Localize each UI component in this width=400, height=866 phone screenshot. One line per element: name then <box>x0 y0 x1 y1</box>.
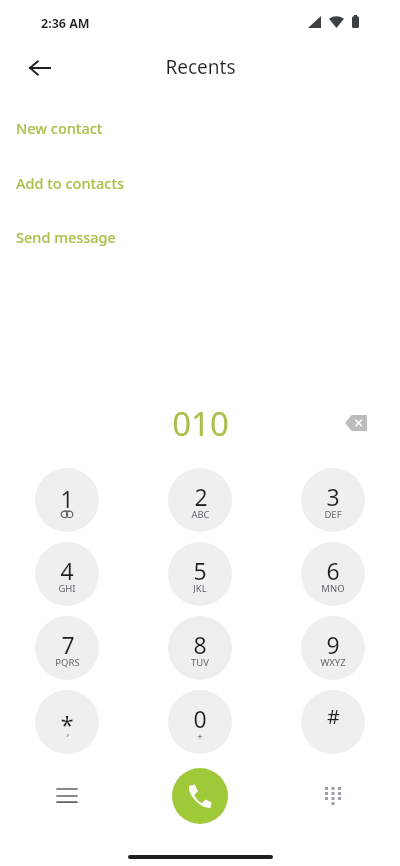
button[interactable]: 3 <box>301 468 365 532</box>
button[interactable]: 6 <box>301 542 365 606</box>
button[interactable]: 4 <box>35 542 99 606</box>
staticText: WXYZ <box>320 656 346 668</box>
button[interactable]: 1 <box>35 468 99 532</box>
button[interactable]: # <box>301 690 365 754</box>
staticText: 6 <box>326 555 340 581</box>
button[interactable]: 7 <box>35 616 99 680</box>
staticText: 1 <box>60 483 74 509</box>
button[interactable]: * <box>35 690 99 754</box>
staticText: # <box>327 703 340 729</box>
staticText: ABC <box>191 508 210 520</box>
staticText: DEF <box>324 508 342 520</box>
staticText: 3 <box>326 481 340 507</box>
staticText: New contact <box>16 118 103 138</box>
button[interactable]: 8 <box>168 616 232 680</box>
button[interactable]: Call log <box>45 774 89 818</box>
staticText: 4 <box>60 555 74 581</box>
staticText: JKL <box>193 582 207 594</box>
button[interactable]: Back <box>18 46 62 90</box>
staticText: + <box>197 730 203 742</box>
staticText: PQRS <box>55 656 80 668</box>
staticText: 010 <box>172 401 229 446</box>
staticText: GHI <box>58 582 76 594</box>
button[interactable]: 9 <box>301 616 365 680</box>
button[interactable]: Dialpad <box>311 774 355 818</box>
staticText: Send message <box>16 227 116 247</box>
button[interactable]: 2 <box>168 468 232 532</box>
staticText: Add to contacts <box>16 173 125 193</box>
staticText: 2 <box>194 481 208 507</box>
staticText: 9 <box>326 629 340 655</box>
button[interactable]: 0 <box>168 690 232 754</box>
staticText: Recents <box>165 54 236 80</box>
staticText: TUV <box>191 656 209 668</box>
staticText: 0 <box>193 703 207 729</box>
staticText: 2:36 AM <box>41 15 90 32</box>
staticText: ′ <box>66 730 69 742</box>
staticText: MNO <box>321 582 345 594</box>
button[interactable]: New contact <box>16 113 316 143</box>
button[interactable]: Add to contacts <box>16 168 316 198</box>
staticText: 8 <box>193 629 207 655</box>
button[interactable]: Backspace <box>334 401 378 445</box>
staticText: * <box>60 708 74 734</box>
button[interactable]: 5 <box>168 542 232 606</box>
staticText: 5 <box>193 555 207 581</box>
button[interactable]: Call <box>172 768 228 824</box>
staticText: 7 <box>61 629 75 655</box>
button[interactable]: Send message <box>16 222 316 252</box>
